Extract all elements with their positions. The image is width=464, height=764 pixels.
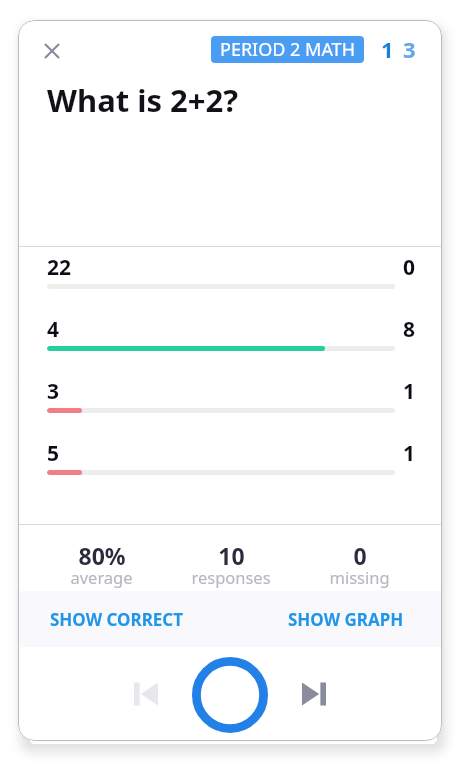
staticText: missing	[329, 566, 390, 588]
staticText: 5	[47, 439, 60, 468]
staticText: 22	[47, 253, 72, 282]
staticText: average	[70, 566, 133, 588]
staticText: 1	[403, 377, 416, 406]
button[interactable]: Close	[30, 29, 73, 72]
staticText: 0	[353, 540, 367, 571]
staticText: 8	[403, 315, 416, 344]
staticText: 80%	[78, 540, 126, 571]
button[interactable]: SHOW GRAPH	[273, 591, 419, 647]
button[interactable]: PERIOD 2 MATH	[211, 36, 364, 63]
staticText: What is 2+2?	[47, 79, 239, 121]
staticText: 3	[403, 34, 416, 64]
button[interactable]: Start	[192, 657, 268, 733]
staticText: responses	[191, 566, 271, 588]
staticText: 0	[403, 253, 416, 282]
button[interactable]: Previous question	[122, 670, 170, 718]
staticText: 10	[218, 540, 245, 571]
staticText: 1	[403, 439, 416, 468]
button[interactable]: SHOW CORRECT	[35, 591, 199, 647]
staticText: SHOW GRAPH	[288, 608, 404, 631]
staticText: 4	[47, 315, 60, 344]
staticText: 1	[381, 34, 394, 64]
staticText: 3	[47, 377, 60, 406]
button[interactable]: Next question	[290, 670, 338, 718]
staticText: SHOW CORRECT	[50, 608, 184, 631]
staticText: PERIOD 2 MATH	[220, 37, 355, 62]
